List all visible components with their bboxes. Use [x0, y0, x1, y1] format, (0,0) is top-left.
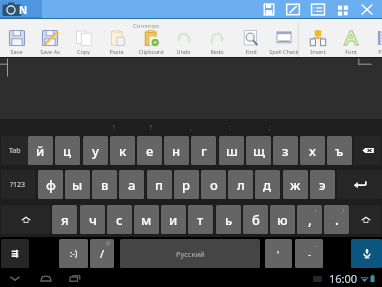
button[interactable]: Русский — [120, 239, 260, 268]
button[interactable]: щ — [246, 136, 271, 165]
staticText: @ — [106, 240, 111, 247]
button[interactable]: / — [90, 239, 114, 268]
button[interactable]: Save As — [33, 19, 66, 58]
staticText: Font — [345, 48, 357, 55]
button[interactable]: э — [310, 170, 335, 199]
staticText: х — [309, 142, 316, 160]
staticText: Clipboard — [138, 48, 164, 55]
button[interactable]: ъ — [327, 136, 352, 165]
staticText: ы — [72, 176, 83, 194]
button[interactable]: ц — [55, 136, 80, 165]
button[interactable]: л — [228, 170, 253, 199]
button[interactable]: Insert — [301, 19, 334, 58]
button[interactable]: Backspace — [354, 136, 381, 165]
staticText: э — [319, 176, 326, 194]
button[interactable]: п — [147, 170, 172, 199]
button[interactable]: Save — [0, 19, 33, 58]
button[interactable]: - — [295, 239, 323, 268]
button[interactable]: ь — [216, 205, 241, 234]
button[interactable]: Paste — [100, 19, 133, 58]
button[interactable]: Clipboard — [134, 19, 167, 58]
button[interactable]: Close — [356, 0, 378, 19]
button[interactable]: Shift — [1, 205, 50, 234]
button[interactable]: , — [297, 205, 322, 234]
button[interactable]: Save — [258, 0, 280, 19]
button[interactable]: Shift — [350, 205, 381, 234]
button[interactable]: к — [110, 136, 135, 165]
button[interactable]: р — [174, 170, 199, 199]
button[interactable]: View list — [307, 0, 329, 19]
button[interactable]: Spell Check — [267, 19, 300, 58]
button[interactable]: Find — [234, 19, 267, 58]
button[interactable]: Keyboard settings — [1, 239, 29, 268]
button[interactable]: Document tab — [0, 0, 42, 17]
button[interactable]: Para — [367, 19, 382, 58]
button[interactable]: ' — [265, 239, 292, 268]
staticText: ъ — [335, 142, 344, 160]
button[interactable]: Undo — [167, 19, 200, 58]
staticText: у — [92, 142, 99, 160]
button[interactable]: т — [188, 205, 213, 234]
staticText: ?123 — [10, 180, 26, 190]
button[interactable]: Voice input — [351, 239, 382, 268]
staticText: г — [201, 142, 207, 160]
button[interactable]: :-) — [59, 239, 88, 268]
button[interactable]: е — [137, 136, 162, 165]
staticText: н — [172, 142, 181, 160]
button[interactable]: ч — [80, 205, 105, 234]
staticText: Copy — [77, 48, 90, 55]
staticText: с — [116, 211, 123, 229]
staticText: д — [263, 176, 272, 194]
button[interactable]: а — [119, 170, 144, 199]
button[interactable]: Apps — [332, 0, 354, 19]
button[interactable]: б — [243, 205, 268, 234]
button[interactable]: ш — [219, 136, 244, 165]
button[interactable]: Recent apps — [60, 269, 90, 287]
button[interactable]: я — [52, 205, 77, 234]
button[interactable]: ю — [270, 205, 295, 234]
staticText: ч — [89, 211, 97, 229]
button[interactable]: й — [28, 136, 53, 165]
staticText: ! — [113, 123, 115, 132]
staticText: б — [252, 211, 260, 229]
staticText: Save As — [40, 48, 60, 55]
staticText: Spell Check — [269, 48, 299, 55]
staticText: ? — [149, 123, 153, 132]
staticText: 16:00 — [329, 271, 358, 286]
staticText: Para — [378, 48, 382, 55]
staticText: й — [36, 142, 45, 160]
staticText: / — [100, 246, 105, 261]
button[interactable]: д — [255, 170, 280, 199]
button[interactable]: Font — [334, 19, 367, 58]
button[interactable]: ж — [283, 170, 308, 199]
button[interactable]: и — [161, 205, 186, 234]
button[interactable]: Tab — [1, 136, 28, 165]
staticText: Русский — [176, 249, 205, 259]
button[interactable]: м — [134, 205, 159, 234]
button[interactable]: в — [92, 170, 117, 199]
staticText: ' — [277, 248, 280, 260]
button[interactable]: Enter — [337, 170, 382, 199]
button[interactable]: Edit — [282, 0, 304, 19]
button[interactable]: Copy — [67, 19, 100, 58]
button[interactable]: Home — [31, 269, 61, 287]
staticText: о — [210, 176, 218, 194]
staticText: ф — [46, 176, 56, 194]
button[interactable]: ы — [65, 170, 90, 199]
staticText: ! — [315, 207, 317, 214]
button[interactable]: . — [324, 205, 349, 234]
button[interactable]: з — [273, 136, 298, 165]
button[interactable]: о — [201, 170, 226, 199]
button[interactable]: н — [164, 136, 189, 165]
button[interactable]: ?123 — [1, 170, 35, 199]
button[interactable]: ф — [38, 170, 63, 199]
button[interactable]: х — [300, 136, 325, 165]
staticText: . — [335, 210, 339, 229]
button[interactable]: Back — [0, 269, 30, 287]
staticText: N — [19, 3, 28, 17]
button[interactable]: г — [191, 136, 216, 165]
staticText: Insert — [310, 48, 326, 55]
button[interactable]: у — [83, 136, 108, 165]
button[interactable]: Redo — [200, 19, 233, 58]
button[interactable]: с — [107, 205, 132, 234]
